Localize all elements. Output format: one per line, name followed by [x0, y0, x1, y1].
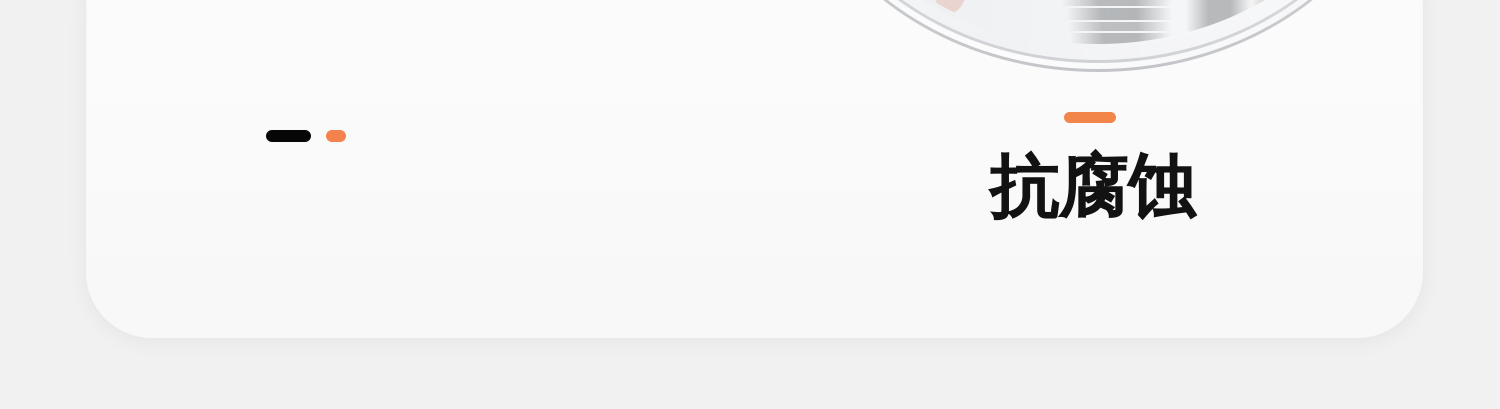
- staticText: 抗腐蚀: [989, 145, 1196, 230]
- button[interactable]: Page 1, current page: [266, 130, 311, 142]
- button[interactable]: Page 2: [326, 130, 346, 142]
